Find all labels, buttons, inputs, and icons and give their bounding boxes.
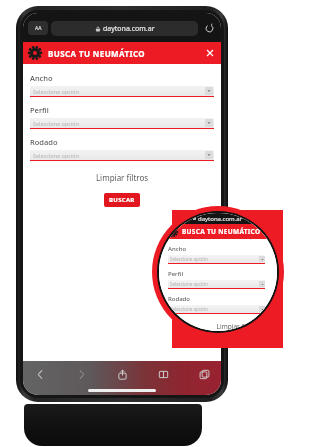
staticText: Ancho — [168, 245, 187, 253]
staticText: Perfil — [168, 270, 184, 278]
button[interactable]: Limpiar filtros — [159, 322, 259, 331]
button[interactable]: Reload — [202, 21, 216, 35]
button[interactable]: BUSCA TU NEUMÁTICO — [159, 224, 277, 239]
button[interactable]: Forward — [70, 363, 92, 385]
button[interactable]: Seleccione opción — [168, 305, 265, 314]
staticText: Seleccione opción — [170, 306, 208, 312]
staticText: Seleccione opción — [170, 256, 208, 262]
button[interactable]: BUSCAR — [104, 193, 140, 207]
button[interactable]: Back — [29, 363, 51, 385]
staticText: Seleccione opción — [33, 152, 80, 159]
button[interactable]: Seleccione opción — [168, 280, 265, 289]
staticText: Seleccione opción — [33, 88, 80, 95]
button[interactable]: Tabs — [193, 363, 215, 385]
staticText: Rodado — [168, 295, 190, 303]
staticText: Rodado — [30, 137, 58, 147]
staticText: BUSCA TU NEUMÁTICO — [182, 227, 261, 236]
button[interactable]: daytona.com.ar — [51, 21, 198, 36]
button[interactable]: Seleccione opción — [30, 150, 214, 161]
button[interactable]: Bookmarks — [152, 363, 174, 385]
button[interactable]: Seleccione opción — [30, 86, 214, 97]
button[interactable]: Seleccione opción — [30, 118, 214, 129]
staticText: Seleccione opción — [33, 120, 80, 127]
staticText: BUSCA TU NEUMÁTICO — [48, 48, 146, 59]
button[interactable]: BUSCA TU NEUMÁTICO — [23, 42, 221, 64]
staticText: BUSCAR — [109, 196, 135, 204]
staticText: Ancho — [30, 73, 53, 83]
staticText: Perfil — [30, 105, 49, 115]
staticText: Seleccione opción — [170, 281, 208, 287]
staticText: AA — [35, 25, 42, 32]
button[interactable]: Seleccione opción — [168, 255, 265, 264]
staticText: daytona.com.ar — [103, 24, 155, 34]
button[interactable]: Close — [202, 45, 218, 61]
button[interactable]: Share — [111, 363, 133, 385]
button[interactable]: Text size — [28, 21, 48, 35]
staticText: daytona.com.ar — [198, 215, 243, 223]
button[interactable]: Limpiar filtros — [23, 172, 221, 183]
